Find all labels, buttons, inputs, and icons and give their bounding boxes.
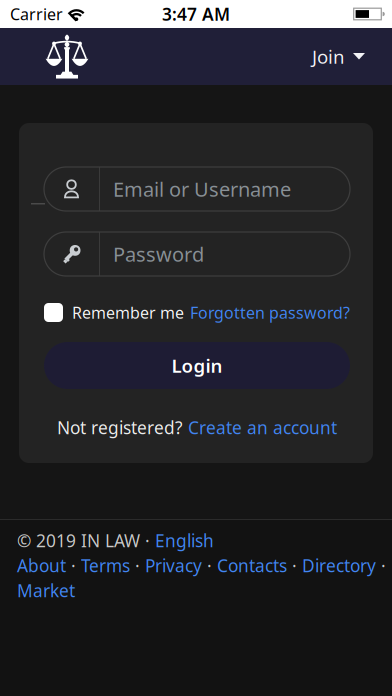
button[interactable]: Login	[44, 342, 350, 389]
staticText: Login	[171, 353, 222, 378]
staticText: About	[17, 554, 66, 577]
staticText: Join	[312, 44, 345, 69]
button[interactable]: Forgotten password?	[190, 302, 350, 323]
staticText: ·	[130, 554, 145, 577]
button[interactable]: Market	[17, 579, 75, 602]
button[interactable]: About	[17, 554, 66, 577]
button[interactable]: IN LAW home	[0, 34, 89, 78]
button[interactable]: Contacts	[217, 554, 287, 577]
staticText: Forgotten password?	[190, 302, 350, 323]
staticText: ·	[376, 554, 386, 577]
staticText: ·	[66, 554, 81, 577]
staticText: Market	[17, 579, 75, 602]
staticText: English	[155, 529, 214, 552]
staticText: 3:47 AM	[162, 2, 230, 25]
button[interactable]: Create an account	[188, 416, 337, 439]
staticText: Privacy	[145, 554, 202, 577]
button[interactable]: Terms	[81, 554, 130, 577]
button[interactable]: Directory	[302, 554, 376, 577]
staticText: © 2019 IN LAW ·	[17, 529, 155, 552]
staticText: ·	[202, 554, 217, 577]
button[interactable]: Privacy	[145, 554, 202, 577]
button[interactable]: Join	[312, 44, 392, 69]
staticText: Not registered?	[57, 416, 183, 439]
staticText: Carrier	[10, 3, 63, 25]
staticText: Email or Username	[113, 176, 291, 202]
staticText: Password	[113, 241, 204, 267]
staticText: ·	[287, 554, 302, 577]
button[interactable]: English	[155, 529, 214, 552]
button[interactable]: Remember me	[44, 302, 184, 323]
staticText: Directory	[302, 554, 376, 577]
staticText: Contacts	[217, 554, 287, 577]
staticText: Create an account	[188, 416, 337, 439]
staticText: Terms	[81, 554, 130, 577]
staticText: Remember me	[72, 302, 184, 323]
